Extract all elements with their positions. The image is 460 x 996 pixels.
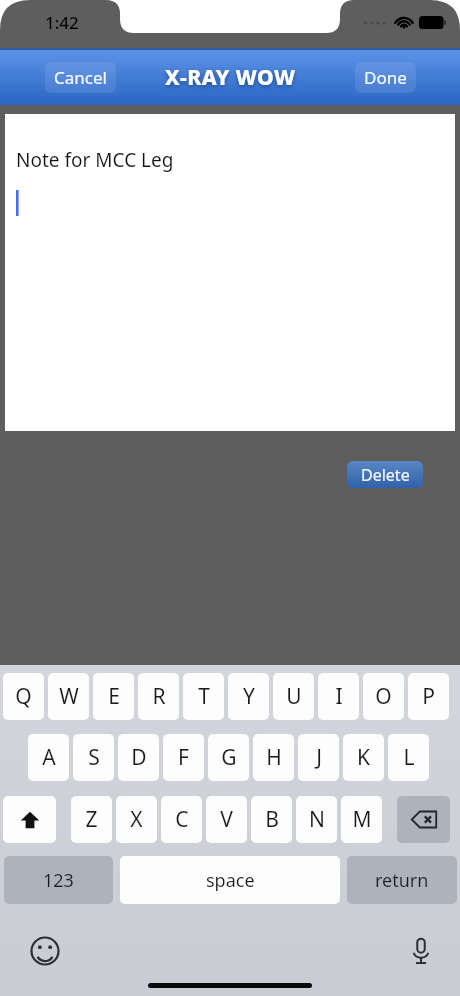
- button[interactable]: H: [253, 734, 294, 781]
- staticText: U: [286, 682, 302, 711]
- button[interactable]: Emoji keyboard: [26, 932, 64, 970]
- staticText: W: [59, 682, 79, 711]
- staticText: return: [375, 868, 429, 893]
- staticText: M: [352, 805, 372, 834]
- staticText: Q: [15, 682, 32, 711]
- staticText: Delete: [361, 464, 410, 486]
- button[interactable]: X: [116, 796, 157, 843]
- staticText: L: [403, 743, 415, 772]
- button[interactable]: V: [206, 796, 247, 843]
- staticText: C: [175, 805, 189, 834]
- button[interactable]: Cancel: [45, 62, 116, 93]
- button[interactable]: Done: [355, 62, 416, 93]
- staticText: S: [88, 743, 100, 772]
- staticText: A: [42, 743, 56, 772]
- button[interactable]: Z: [71, 796, 112, 843]
- button[interactable]: T: [183, 673, 224, 720]
- staticText: space: [206, 868, 255, 893]
- staticText: D: [131, 743, 147, 772]
- staticText: Y: [243, 682, 255, 711]
- staticText: F: [178, 743, 189, 772]
- button[interactable]: return: [347, 856, 457, 904]
- button[interactable]: Dictation: [402, 932, 440, 970]
- button[interactable]: N: [296, 796, 337, 843]
- button[interactable]: I: [318, 673, 359, 720]
- staticText: 1:42: [45, 11, 79, 34]
- staticText: X: [130, 805, 143, 834]
- button[interactable]: Delete: [347, 461, 423, 488]
- staticText: K: [357, 743, 370, 772]
- button[interactable]: G: [208, 734, 249, 781]
- button[interactable]: P: [408, 673, 449, 720]
- staticText: X-RAY WOW: [165, 63, 296, 92]
- button[interactable]: F: [163, 734, 204, 781]
- staticText: N: [309, 805, 325, 834]
- button[interactable]: Note for MCC Leg: [5, 114, 455, 431]
- button[interactable]: Y: [228, 673, 269, 720]
- button[interactable]: C: [161, 796, 202, 843]
- button[interactable]: Q: [3, 673, 44, 720]
- staticText: O: [375, 682, 392, 711]
- staticText: T: [198, 682, 210, 711]
- staticText: Z: [85, 805, 98, 834]
- staticText: R: [152, 682, 166, 711]
- button[interactable]: J: [298, 734, 339, 781]
- staticText: H: [266, 743, 282, 772]
- button[interactable]: Shift: [3, 796, 56, 843]
- button[interactable]: L: [388, 734, 429, 781]
- button[interactable]: U: [273, 673, 314, 720]
- staticText: 123: [43, 868, 74, 893]
- staticText: B: [265, 805, 279, 834]
- staticText: Done: [364, 66, 407, 89]
- staticText: Cancel: [54, 66, 107, 89]
- button[interactable]: 123: [4, 856, 113, 904]
- staticText: P: [422, 682, 435, 711]
- staticText: G: [221, 743, 237, 772]
- button[interactable]: B: [251, 796, 292, 843]
- button[interactable]: R: [138, 673, 179, 720]
- staticText: Note for MCC Leg: [16, 147, 174, 173]
- button[interactable]: W: [48, 673, 89, 720]
- button[interactable]: Backspace: [397, 796, 450, 843]
- button[interactable]: S: [73, 734, 114, 781]
- button[interactable]: E: [93, 673, 134, 720]
- staticText: J: [316, 743, 322, 772]
- button[interactable]: A: [28, 734, 69, 781]
- staticText: I: [335, 682, 343, 711]
- staticText: V: [220, 805, 233, 834]
- button[interactable]: K: [343, 734, 384, 781]
- button[interactable]: D: [118, 734, 159, 781]
- button[interactable]: space: [120, 856, 340, 904]
- staticText: E: [108, 682, 120, 711]
- button[interactable]: M: [341, 796, 382, 843]
- button[interactable]: O: [363, 673, 404, 720]
